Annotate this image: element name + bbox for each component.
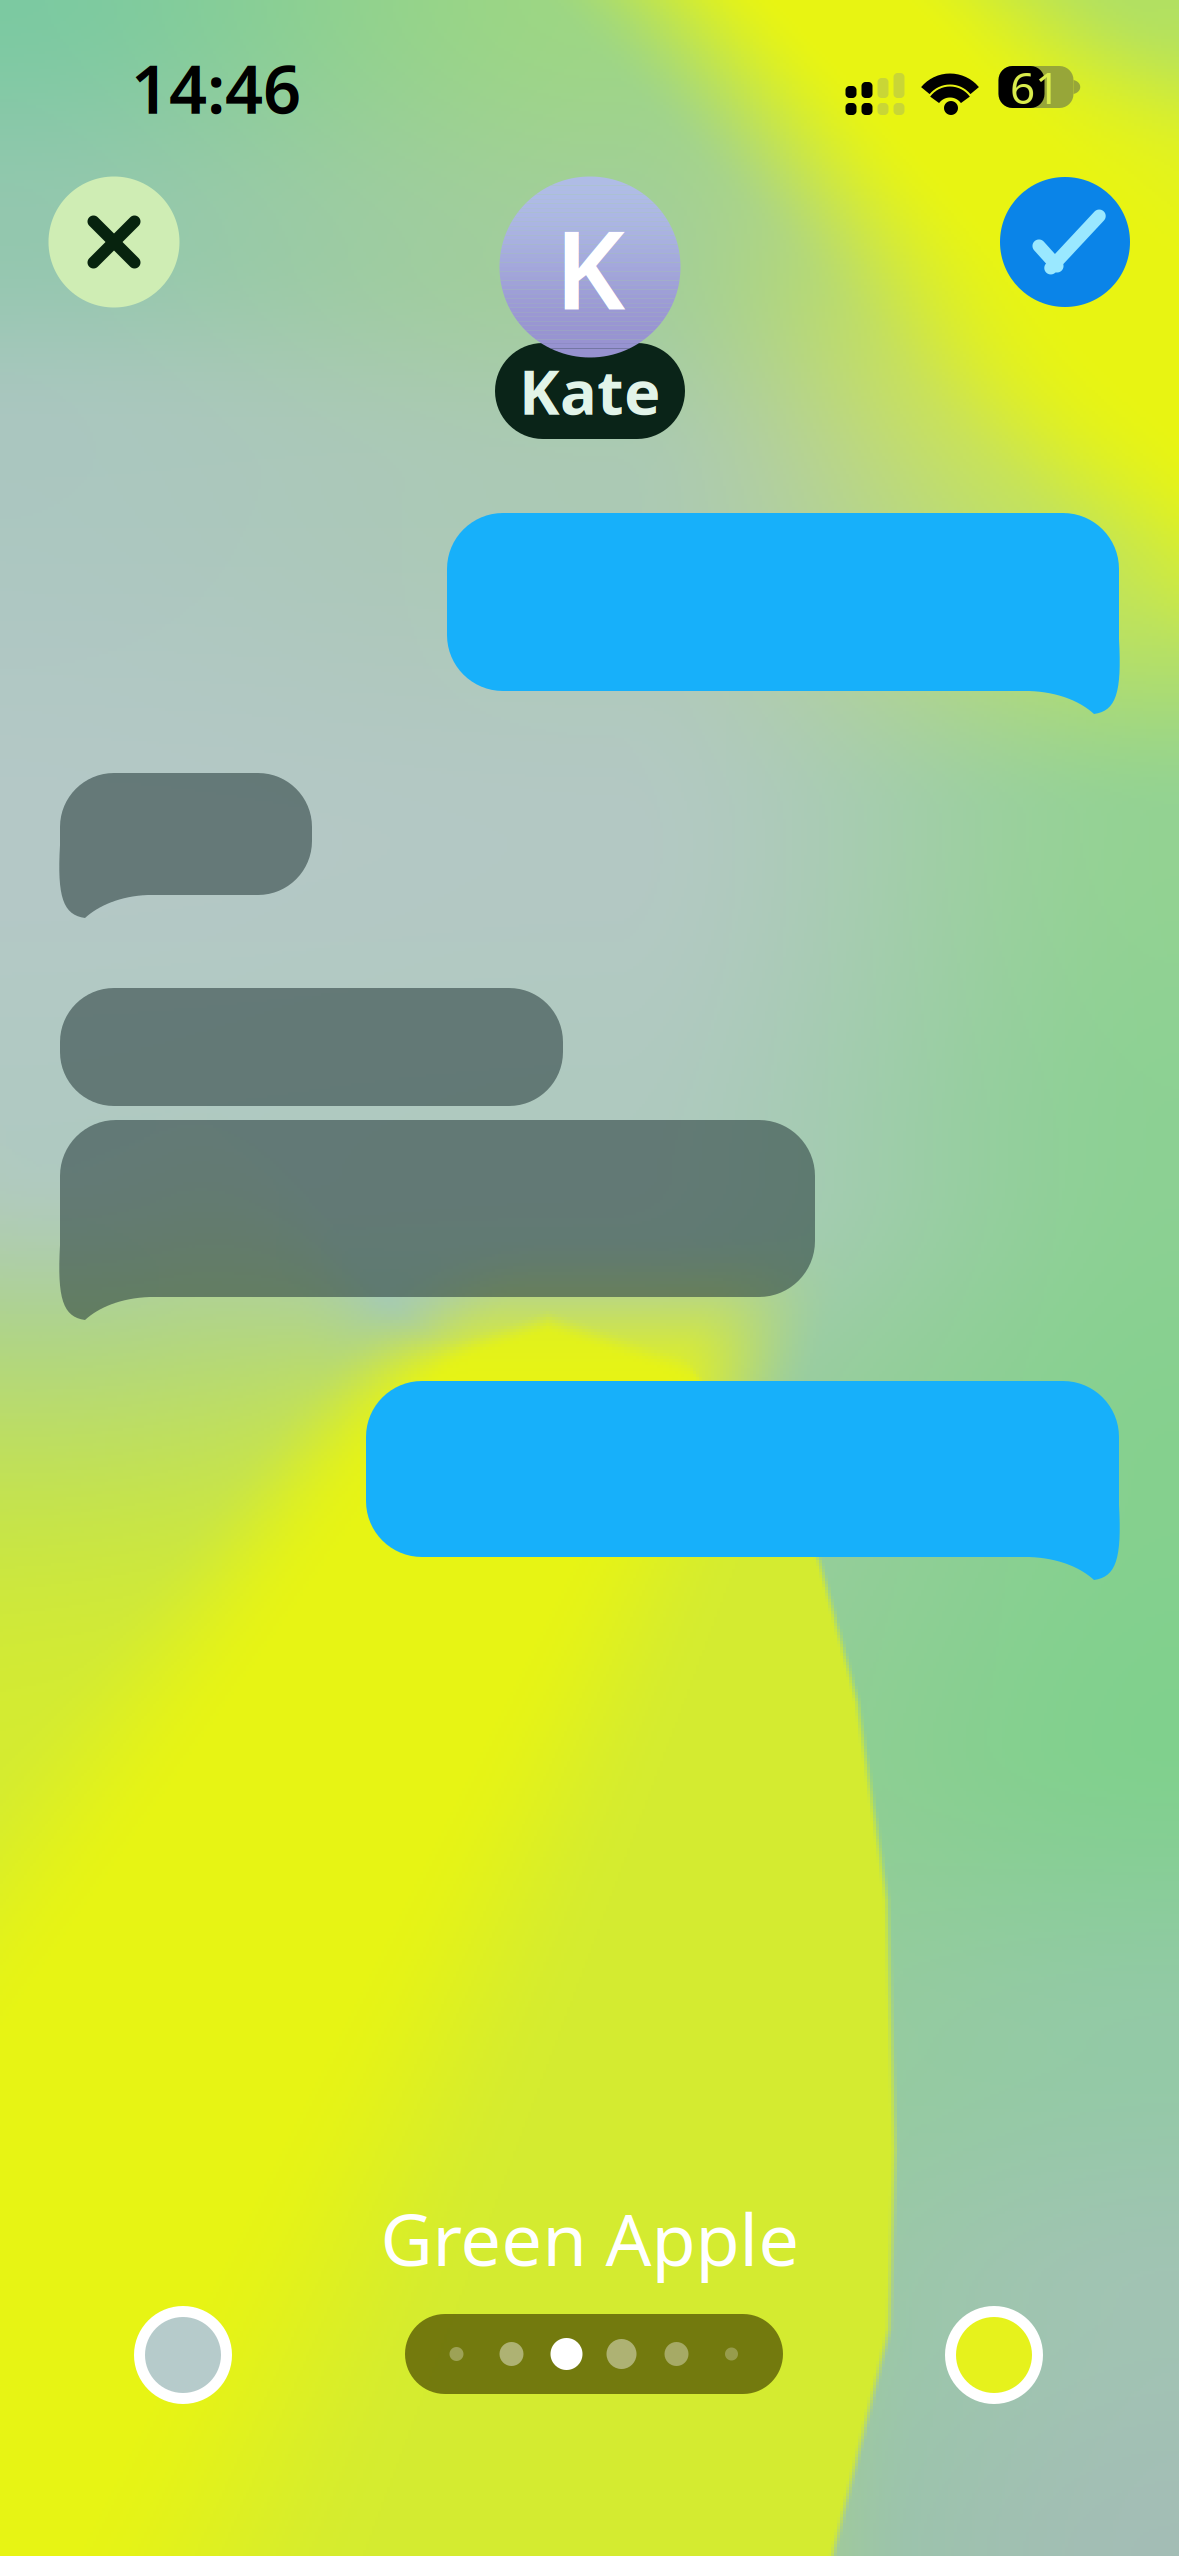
staticText: K bbox=[554, 194, 625, 340]
staticText: Kate bbox=[519, 350, 661, 432]
button[interactable]: Bright background colour bbox=[942, 2303, 1046, 2407]
button[interactable]: Close bbox=[48, 176, 179, 307]
staticText: 61 bbox=[1010, 58, 1060, 116]
button[interactable]: Done bbox=[1000, 177, 1130, 307]
staticText: 14:46 bbox=[131, 44, 301, 132]
button[interactable]: Light background colour bbox=[131, 2303, 235, 2407]
staticText: Green Apple bbox=[380, 2190, 799, 2286]
